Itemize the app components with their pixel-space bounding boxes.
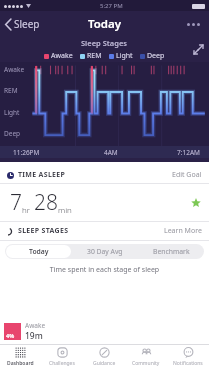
button[interactable]: Guidance <box>83 344 125 370</box>
staticText: Awake <box>4 65 25 74</box>
staticText: Benchmark <box>153 247 190 256</box>
staticText: REM <box>87 51 102 61</box>
staticText: 19m <box>25 330 43 342</box>
other: Goal met <box>191 198 201 208</box>
staticText: Deep <box>4 129 21 138</box>
staticText: 11:26PM <box>13 148 40 157</box>
staticText: Dashboard <box>7 360 34 367</box>
button[interactable]: Community <box>125 344 167 370</box>
staticText: SLEEP STAGES <box>18 226 69 236</box>
staticText: 4% <box>6 332 15 339</box>
button[interactable]: 4% <box>0 321 209 342</box>
button[interactable]: Challenges <box>41 344 83 370</box>
staticText: Sleep Stages <box>81 38 128 48</box>
staticText: Awake <box>51 51 73 61</box>
staticText: Learn More <box>164 226 202 236</box>
button[interactable]: Dashboard <box>0 344 41 370</box>
staticText: 5:27 PM <box>100 2 123 10</box>
staticText: min <box>58 204 72 215</box>
button[interactable]: Sleep <box>0 13 46 35</box>
staticText: Today <box>29 247 49 256</box>
staticText: 28 <box>34 188 58 217</box>
button[interactable]: SLEEP STAGES <box>0 222 209 240</box>
staticText: 7:12AM <box>177 148 200 157</box>
staticText: Notifications <box>173 360 203 367</box>
staticText: 7 <box>10 188 22 217</box>
staticText: Guidance <box>93 360 116 367</box>
button[interactable]: Today <box>6 245 71 258</box>
staticText: TIME ASLEEP <box>18 170 66 180</box>
staticText: REM <box>4 86 18 95</box>
staticText: Awake <box>25 321 46 330</box>
staticText: Sleep <box>14 17 40 31</box>
staticText: Time spent in each stage of sleep <box>0 265 209 275</box>
staticText: hr <box>22 204 30 215</box>
staticText: 30 Day Avg <box>87 247 123 256</box>
staticText: Edit Goal <box>172 170 202 180</box>
staticText: Light <box>116 51 133 61</box>
staticText: Challenges <box>49 360 75 367</box>
button[interactable]: 30 Day Avg <box>73 245 137 258</box>
button[interactable]: TIME ASLEEP <box>0 167 209 183</box>
button[interactable]: Notifications <box>167 344 209 370</box>
staticText: Deep <box>147 51 165 61</box>
staticText: 4AM <box>104 148 118 157</box>
staticText: Community <box>132 360 160 367</box>
button[interactable]: Benchmark <box>139 245 203 258</box>
staticText: Today <box>88 16 122 32</box>
staticText: Light <box>4 108 20 117</box>
button[interactable]: Expand chart <box>188 39 209 60</box>
button[interactable]: More options <box>178 15 209 34</box>
